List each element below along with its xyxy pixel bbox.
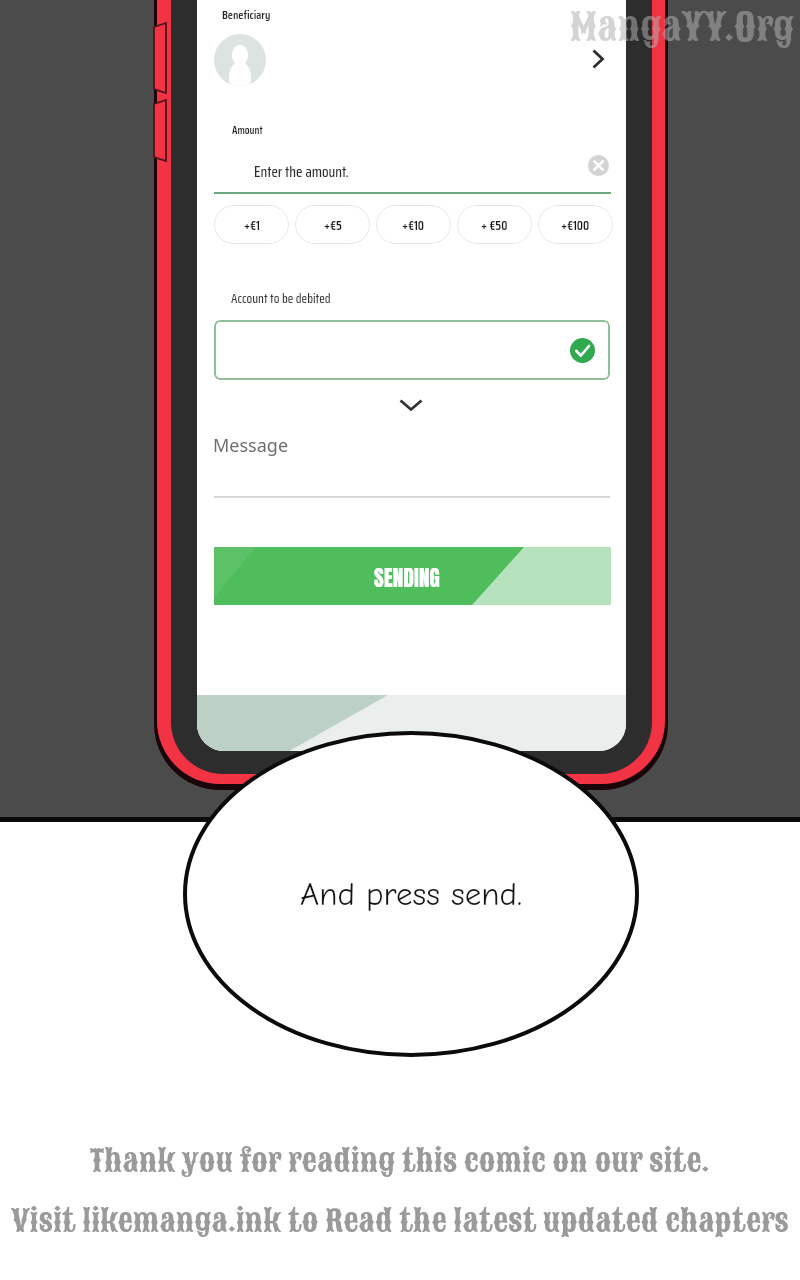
staticText: And press send. xyxy=(300,875,522,913)
staticText: Message xyxy=(213,433,289,458)
button[interactable]: +€1 xyxy=(214,205,289,244)
staticText: + €50 xyxy=(481,215,508,235)
staticText: +€10 xyxy=(402,215,425,235)
staticText: Enter the amount. xyxy=(254,160,349,184)
staticText: Amount xyxy=(232,122,263,139)
staticText: Account to be debited xyxy=(231,288,331,308)
button[interactable]: Expand account list xyxy=(395,389,427,421)
button[interactable]: SENDING xyxy=(214,547,611,605)
button[interactable]: +€10 xyxy=(376,205,451,244)
button[interactable]: +€100 xyxy=(538,205,613,244)
staticText: +€1 xyxy=(244,215,260,235)
staticText: Thank you for reading this comic on our … xyxy=(90,1140,710,1182)
button[interactable]: Clear amount xyxy=(588,155,609,176)
button[interactable]: Account to be debited xyxy=(214,320,610,380)
button[interactable]: Choose beneficiary xyxy=(581,42,615,76)
button[interactable]: + €50 xyxy=(457,205,532,244)
staticText: Beneficiary xyxy=(222,5,271,24)
staticText: +€100 xyxy=(561,215,590,235)
staticText: MangaYY.Org xyxy=(570,2,794,53)
button[interactable]: +€5 xyxy=(295,205,370,244)
button[interactable]: Beneficiary avatar xyxy=(214,34,266,86)
staticText: Visit likemanga.ink to Read the latest u… xyxy=(11,1200,789,1242)
staticText: SENDING xyxy=(374,562,440,594)
staticText: +€5 xyxy=(324,215,342,235)
